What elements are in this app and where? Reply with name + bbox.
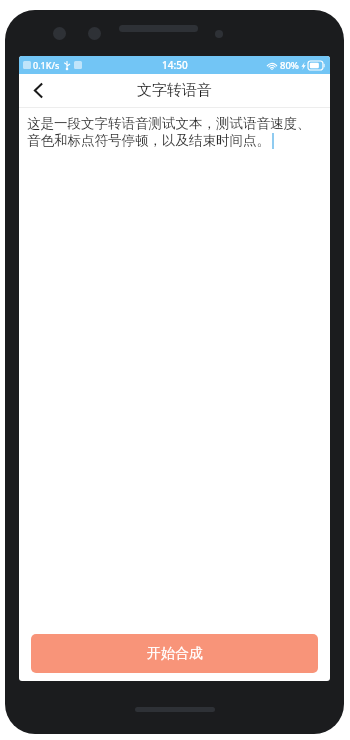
staticText: 0.1K/s (33, 59, 60, 71)
staticText: 音色和标点符号停顿，以及结束时间点。 (27, 132, 270, 149)
button[interactable]: 这是一段文字转语音测试文本，测试语音速度、 (19, 108, 330, 630)
staticText: 这是一段文字转语音测试文本，测试语音速度、 (27, 115, 311, 132)
staticText: 14:50 (162, 58, 188, 72)
staticText: 80% (280, 59, 299, 72)
staticText: 文字转语音 (137, 81, 212, 100)
button[interactable]: 开始合成 (31, 634, 318, 673)
staticText: 开始合成 (147, 645, 203, 663)
button[interactable]: Back (19, 74, 57, 107)
